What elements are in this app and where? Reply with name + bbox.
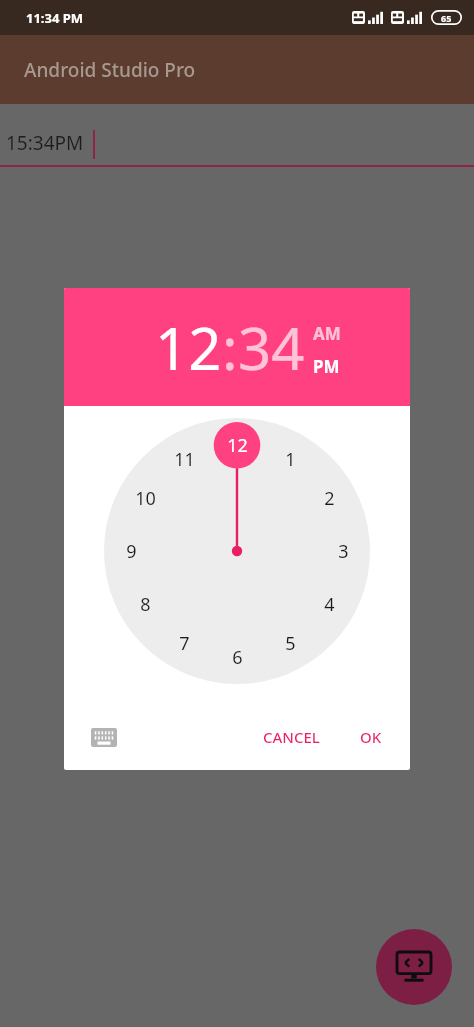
staticText: Android Studio Pro <box>24 57 196 83</box>
staticText: 12 <box>227 433 248 457</box>
staticText: OK <box>360 727 382 747</box>
button[interactable]: 2 <box>311 486 347 510</box>
staticText: 6 <box>232 645 243 669</box>
button[interactable]: OK <box>350 719 392 755</box>
button[interactable]: 3 <box>325 539 361 563</box>
button[interactable]: CANCEL <box>253 719 330 755</box>
button[interactable]: 10 <box>127 486 163 510</box>
staticText: 1 <box>285 447 296 471</box>
button[interactable]: 5 <box>272 631 308 655</box>
button[interactable]: 9 <box>113 539 149 563</box>
staticText: 9 <box>126 539 137 563</box>
staticText: 11:34 PM <box>26 9 84 27</box>
button[interactable]: 11 <box>166 447 202 471</box>
staticText: 11 <box>174 447 195 471</box>
staticText: 2 <box>324 486 335 510</box>
staticText: 15:34PM <box>6 130 84 156</box>
staticText: 65 <box>441 12 452 24</box>
button[interactable]: PM <box>313 355 340 378</box>
button[interactable]: 12 <box>104 418 370 684</box>
button[interactable]: AM <box>313 322 341 345</box>
button[interactable]: 34 <box>238 308 305 387</box>
button[interactable]: 12 <box>155 308 222 387</box>
staticText: CANCEL <box>263 727 320 747</box>
button[interactable]: 1 <box>272 447 308 471</box>
staticText: : <box>222 308 238 387</box>
button[interactable]: Switch to keyboard input <box>84 717 124 757</box>
button[interactable]: 7 <box>166 631 202 655</box>
staticText: 8 <box>140 592 151 616</box>
button[interactable]: 4 <box>311 592 347 616</box>
staticText: 4 <box>324 592 335 616</box>
button[interactable]: 6 <box>219 645 255 669</box>
button[interactable]: Open code preview <box>376 929 452 1005</box>
button[interactable]: 12 <box>219 433 255 457</box>
staticText: 3 <box>338 539 349 563</box>
staticText: 10 <box>135 486 156 510</box>
staticText: 7 <box>179 631 190 655</box>
staticText: 5 <box>285 631 296 655</box>
button[interactable]: 8 <box>127 592 163 616</box>
